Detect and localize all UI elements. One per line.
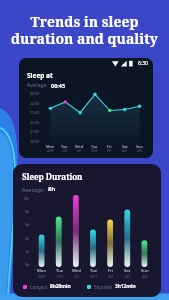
staticText: 4/11 bbox=[90, 274, 98, 279]
staticText: 8h bbox=[25, 209, 30, 214]
staticText: 4/2 bbox=[108, 274, 114, 279]
staticText: 4/3 bbox=[125, 274, 131, 279]
staticText: Average: bbox=[22, 186, 45, 193]
button[interactable]: Shortest bbox=[87, 283, 151, 290]
staticText: 24:00 bbox=[30, 101, 40, 106]
staticText: Trends in sleep duration and quality bbox=[8, 12, 161, 48]
staticText: Average: bbox=[27, 82, 48, 89]
staticText: Mon bbox=[46, 144, 55, 149]
staticText: Fri bbox=[108, 268, 114, 274]
staticText: Shortest bbox=[94, 284, 113, 290]
staticText: 1/31 bbox=[56, 274, 64, 279]
staticText: Wed bbox=[72, 268, 81, 274]
staticText: Sleep Duration bbox=[22, 171, 83, 182]
staticText: Sleep at bbox=[27, 71, 53, 80]
staticText: 2/1 bbox=[74, 274, 80, 279]
staticText: 4/4 bbox=[142, 274, 148, 279]
staticText: 22:00 bbox=[30, 120, 40, 125]
staticText: 4/3 bbox=[137, 149, 142, 153]
staticText: 4/2 bbox=[122, 149, 127, 153]
staticText: 21:00 bbox=[30, 129, 40, 134]
staticText: 23:00 bbox=[30, 110, 40, 115]
staticText: 2/1 bbox=[77, 149, 82, 153]
staticText: Tue bbox=[56, 268, 64, 274]
staticText: 4h bbox=[25, 236, 30, 241]
staticText: 1/31 bbox=[61, 149, 68, 153]
staticText: 3h12min bbox=[115, 283, 136, 290]
staticText: Sun bbox=[141, 268, 149, 274]
staticText: Tue bbox=[61, 144, 68, 149]
staticText: 4/1 bbox=[107, 149, 112, 153]
staticText: Sat bbox=[122, 144, 128, 149]
staticText: Tue bbox=[91, 144, 98, 149]
staticText: 2h bbox=[25, 249, 30, 254]
button[interactable]: 6:30 bbox=[19, 58, 153, 158]
staticText: 20:00 bbox=[30, 139, 40, 144]
staticText: Wed bbox=[75, 144, 84, 149]
staticText: 3/31 bbox=[47, 149, 54, 153]
staticText: 6:30 bbox=[138, 60, 148, 67]
staticText: 0h bbox=[25, 262, 30, 267]
staticText: Fri bbox=[107, 144, 112, 149]
staticText: 00:00 bbox=[30, 91, 40, 96]
staticText: 8h bbox=[48, 185, 56, 193]
staticText: 3/29 bbox=[38, 274, 46, 279]
staticText: 10h bbox=[23, 196, 30, 201]
staticText: Sat bbox=[124, 268, 131, 274]
staticText: Longest bbox=[30, 284, 48, 290]
staticText: Sun bbox=[136, 144, 143, 149]
button[interactable]: Longest bbox=[23, 283, 87, 290]
staticText: 00:45 bbox=[51, 82, 66, 89]
staticText: 3/31 bbox=[91, 149, 98, 153]
staticText: Tue bbox=[90, 268, 98, 274]
staticText: 6h bbox=[25, 222, 30, 227]
staticText: 8h20min bbox=[50, 283, 71, 290]
button[interactable]: Sleep Duration bbox=[13, 164, 161, 297]
staticText: Mon bbox=[37, 268, 47, 274]
